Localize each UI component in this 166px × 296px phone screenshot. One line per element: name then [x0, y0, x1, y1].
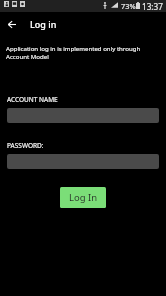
staticText: PASSWORD:	[7, 141, 44, 150]
staticText: 13:37	[142, 1, 163, 12]
button[interactable]: Log In	[60, 187, 106, 208]
button[interactable]: Navigate up	[0, 12, 24, 36]
staticText: Log In	[69, 191, 98, 204]
staticText: ACCOUNT NAME	[7, 95, 58, 104]
staticText: 73%	[121, 1, 136, 11]
staticText: Log in	[30, 18, 57, 30]
staticText: Application log in is implemented only t…	[6, 44, 152, 60]
